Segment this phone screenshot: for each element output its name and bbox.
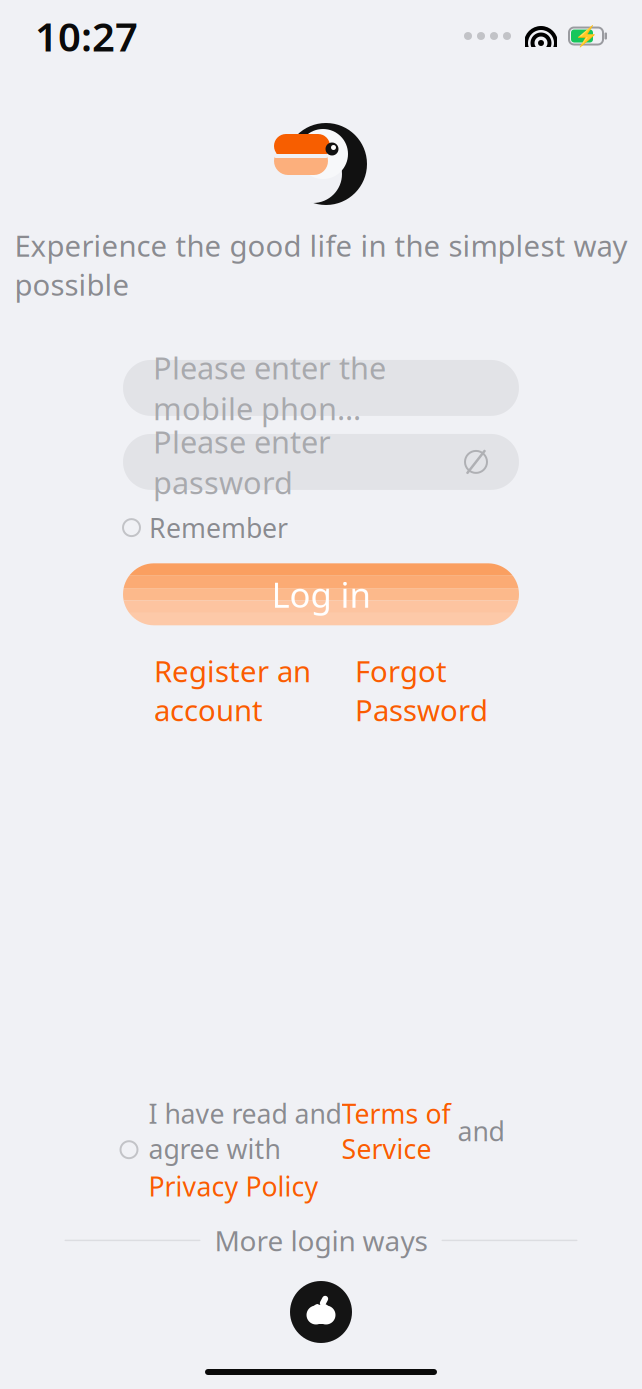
button[interactable]: Password field, show password — [123, 434, 519, 490]
staticText: Privacy Policy — [148, 1168, 318, 1204]
staticText: Experience the good life in the simplest… — [14, 226, 627, 304]
staticText: Log in — [271, 571, 370, 617]
button[interactable]: Privacy Policy — [148, 1168, 318, 1204]
staticText: Please enter password — [153, 421, 331, 503]
staticText: Forgot Password — [355, 651, 488, 729]
button[interactable]: Agree to terms — [117, 1138, 140, 1161]
staticText: Register an account — [154, 651, 311, 729]
button[interactable]: Log in — [123, 563, 519, 625]
staticText: I have read and agree with — [148, 1096, 341, 1166]
button[interactable]: Terms of Service — [341, 1096, 450, 1166]
staticText: and — [450, 1113, 504, 1149]
staticText: Terms of Service — [341, 1096, 450, 1166]
button[interactable]: Sign in with Apple — [290, 1281, 352, 1343]
staticText: Remember — [149, 510, 288, 545]
button[interactable]: Forgot Password — [355, 645, 488, 735]
button[interactable]: Please enter the mobile phon... — [123, 360, 519, 416]
staticText: Please enter the mobile phon... — [153, 347, 386, 429]
staticText: 10:27 — [35, 9, 138, 62]
button[interactable]: Remember — [123, 504, 288, 551]
staticText: ⚡ — [573, 25, 598, 47]
button[interactable]: Register an account — [154, 645, 311, 735]
staticText: More login ways — [214, 1222, 427, 1259]
